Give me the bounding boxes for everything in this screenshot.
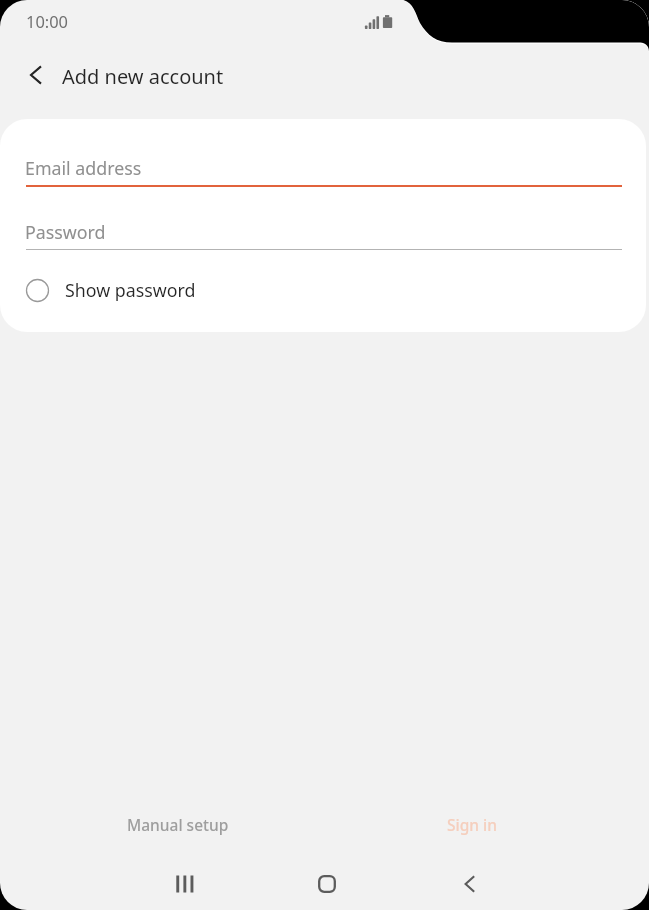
button[interactable]: Recent apps: [145, 858, 224, 910]
button[interactable]: Navigate up: [0, 50, 62, 102]
button[interactable]: Home: [287, 858, 366, 910]
staticText: Email address: [25, 156, 142, 180]
button[interactable]: Sign in: [347, 802, 596, 846]
staticText: Sign in: [447, 814, 497, 835]
staticText: Show password: [65, 278, 196, 302]
button[interactable]: Back: [430, 858, 509, 910]
staticText: Add new account: [62, 63, 224, 90]
button[interactable]: Email address: [26, 139, 622, 186]
button[interactable]: Password: [26, 203, 622, 250]
button[interactable]: Manual setup: [53, 802, 302, 846]
staticText: 10:00: [26, 10, 68, 32]
staticText: Manual setup: [127, 814, 229, 835]
staticText: Password: [25, 220, 106, 244]
button[interactable]: Show password: [0, 266, 646, 314]
